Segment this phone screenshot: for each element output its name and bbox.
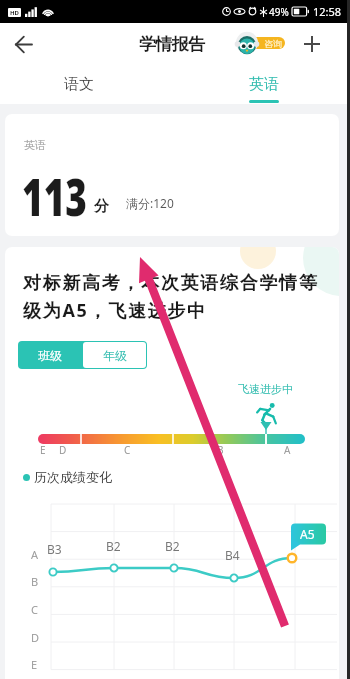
staticText: 咨询 [264, 38, 282, 49]
staticText: A [284, 443, 291, 457]
staticText: 分 [94, 197, 109, 216]
staticText: 英语 [249, 75, 279, 94]
button[interactable]: 语文 [36, 65, 122, 104]
staticText: 满分:120 [126, 195, 174, 211]
staticText: 年级 [103, 348, 127, 363]
staticText: HD [10, 9, 19, 17]
staticText: C [124, 443, 131, 457]
staticText: 班级 [38, 348, 62, 363]
staticText: D [59, 443, 67, 457]
staticText: A5 [300, 526, 315, 542]
staticText: 113 [22, 160, 87, 231]
staticText: 对标新高考，本次英语综合学情等 级为A5，飞速进步中 [23, 272, 319, 322]
staticText: E [31, 657, 38, 672]
button[interactable]: Back [2, 23, 44, 65]
staticText: B [217, 443, 224, 457]
staticText: 语文 [64, 75, 94, 94]
button[interactable]: 班级 [18, 341, 82, 369]
staticText: 12:58 [313, 4, 342, 19]
staticText: E [40, 443, 46, 457]
button[interactable]: Add [291, 23, 333, 65]
button[interactable]: Consult [236, 32, 285, 56]
staticText: 学情报告 [139, 34, 205, 55]
staticText: C [31, 602, 38, 617]
staticText: 历次成绩变化 [34, 469, 112, 485]
staticText: A [31, 547, 39, 562]
staticText: B4 [225, 547, 240, 563]
staticText: B2 [106, 538, 121, 554]
staticText: 英语 [24, 138, 46, 152]
staticText: B [31, 574, 39, 589]
staticText: 飞速进步中 [238, 382, 293, 396]
staticText: B2 [165, 538, 180, 554]
button[interactable]: 英语 [221, 65, 307, 104]
staticText: 49% [269, 5, 289, 19]
staticText: D [31, 630, 40, 645]
button[interactable]: 年级 [83, 342, 146, 368]
staticText: B3 [47, 541, 62, 557]
